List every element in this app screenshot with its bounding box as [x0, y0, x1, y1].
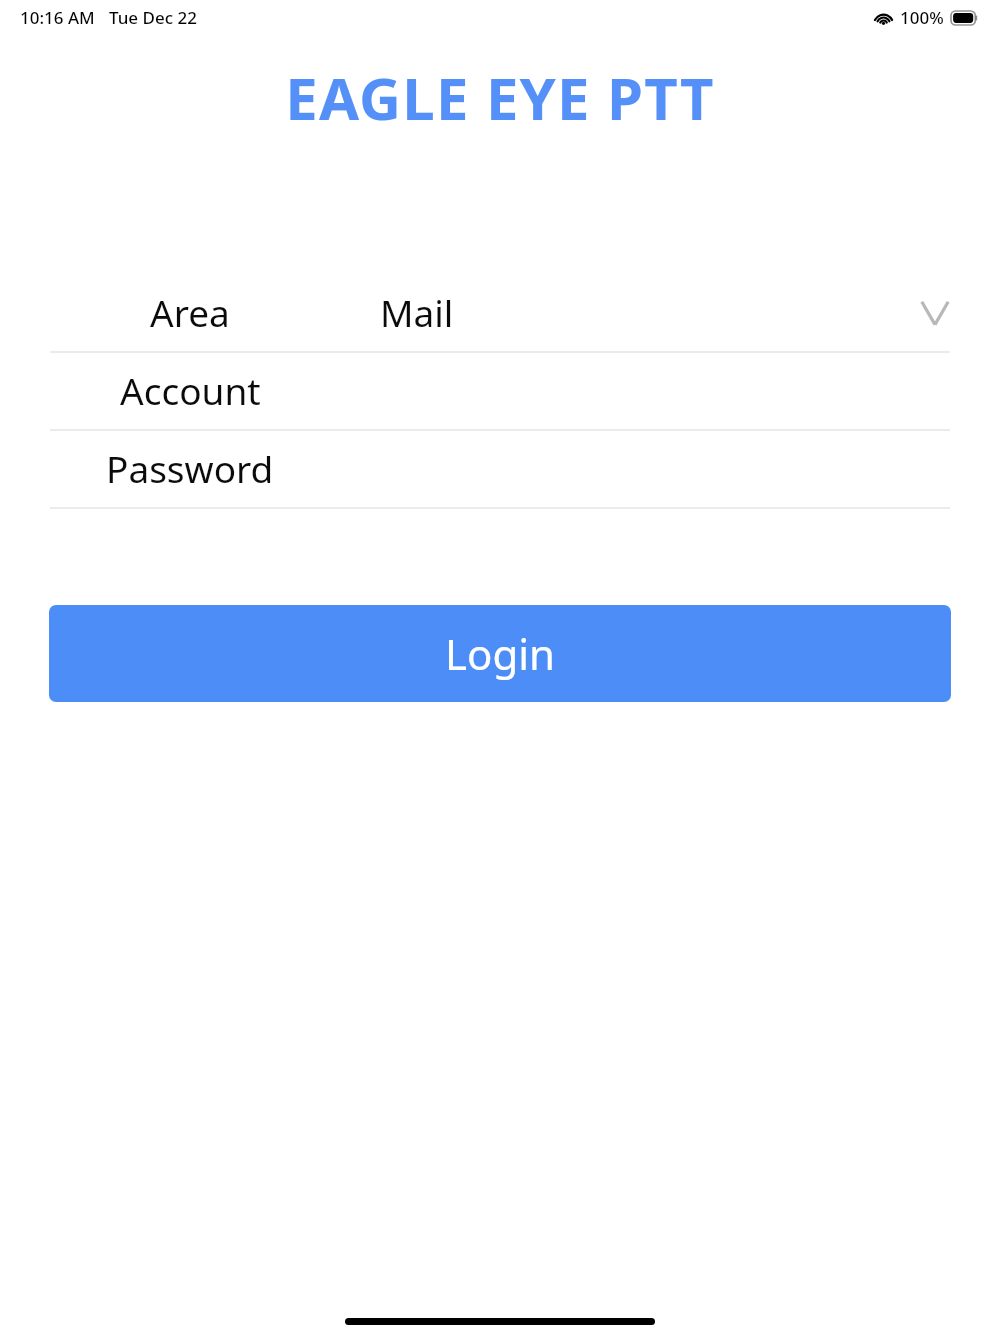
- button[interactable]: Account: [0, 365, 1000, 429]
- staticText: 10:16 AM: [20, 6, 95, 29]
- staticText: Mail: [380, 287, 454, 337]
- button[interactable]: Area: [0, 287, 1000, 351]
- staticText: EAGLE EYE PTT: [0, 58, 1000, 137]
- staticText: Login: [445, 625, 556, 682]
- button[interactable]: Select area: [918, 295, 952, 329]
- staticText: Area: [150, 287, 230, 337]
- staticText: 100%: [900, 6, 944, 29]
- staticText: Account: [120, 365, 261, 415]
- staticText: Tue Dec 22: [109, 6, 197, 29]
- button[interactable]: Login: [49, 605, 951, 702]
- staticText: Password: [106, 443, 274, 493]
- button[interactable]: Password: [0, 443, 1000, 507]
